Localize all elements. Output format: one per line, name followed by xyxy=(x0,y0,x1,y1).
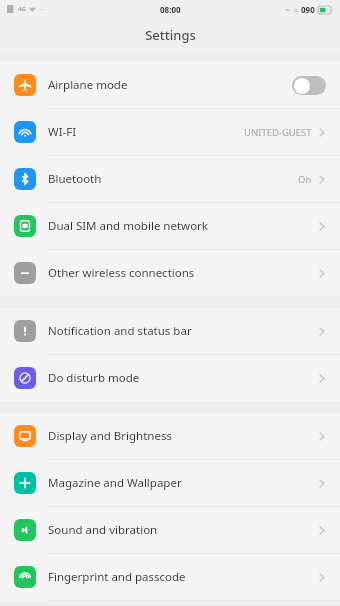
button[interactable]: Airplane mode xyxy=(0,62,340,109)
staticText: Airplane mode xyxy=(48,77,128,93)
staticText: Dual SIM and mobile network xyxy=(48,218,208,234)
staticText: Other wireless connections xyxy=(48,265,195,281)
staticText: ⌂ xyxy=(294,6,298,13)
staticText: ≈ xyxy=(285,6,291,13)
button[interactable]: Bluetooth xyxy=(0,156,340,203)
staticText: Settings xyxy=(145,26,196,44)
button[interactable]: Fingerprint and passcode xyxy=(0,554,340,601)
button[interactable]: Do disturb mode xyxy=(0,355,340,401)
button[interactable]: Magazine and Wallpaper xyxy=(0,460,340,507)
staticText: UNITED-GUEST xyxy=(244,126,312,139)
staticText: Bluetooth xyxy=(48,171,102,187)
button[interactable]: Sound and vibration xyxy=(0,507,340,554)
staticText: WI-FI xyxy=(48,124,77,140)
staticText: 4G xyxy=(18,5,26,13)
staticText: On xyxy=(298,173,312,186)
button[interactable]: Notification and status bar xyxy=(0,308,340,355)
staticText: Sound and vibration xyxy=(48,522,158,538)
button[interactable]: Other wireless connections xyxy=(0,250,340,296)
button[interactable]: WI-FI xyxy=(0,109,340,156)
button[interactable]: Dual SIM and mobile network xyxy=(0,203,340,250)
staticText: 08:00 xyxy=(160,4,181,15)
button[interactable]: Display and Brightness xyxy=(0,413,340,460)
staticText: ··· xyxy=(39,5,44,13)
staticText: 090 xyxy=(301,4,315,15)
staticText: Do disturb mode xyxy=(48,370,140,386)
staticText: Fingerprint and passcode xyxy=(48,569,186,585)
staticText: Magazine and Wallpaper xyxy=(48,475,182,491)
button[interactable]: Airplane mode toggle xyxy=(292,76,326,95)
staticText: Notification and status bar xyxy=(48,323,192,339)
staticText: Display and Brightness xyxy=(48,428,172,444)
